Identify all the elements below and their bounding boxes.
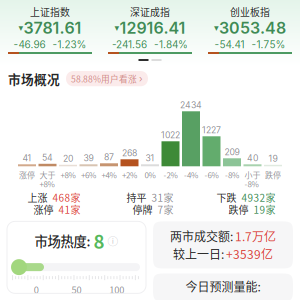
staticText: 上证指数 [30,6,70,17]
staticText: ▾ [18,22,23,33]
staticText: 创业板指 [230,6,270,17]
staticText: ⓘ [107,235,118,247]
button[interactable]: 市场热度: [7,221,146,293]
staticText: 3781.61 [23,18,81,37]
staticText: -54.41 [214,38,244,51]
staticText: 市场热度: [34,233,90,248]
button[interactable]: 上证指数 [0,6,100,51]
staticText: 31 [145,153,154,163]
staticText: -1.84% [154,38,188,51]
staticText: 209 [224,147,239,157]
staticText: 19 [268,153,277,164]
staticText: 7家 [157,204,173,215]
staticText: 0 [34,284,39,295]
staticText: 4932家 [241,192,275,203]
staticText: › [139,73,143,84]
staticText: -46.96 [13,38,45,51]
staticText: 1022 [161,130,180,140]
staticText: -2% [163,170,177,179]
staticText: 深证成指 [130,6,170,17]
staticText: 小于 -8% [244,170,260,188]
staticText: 涨停 [33,204,53,215]
staticText: 268 [122,148,137,158]
staticText: -1.23% [52,38,86,51]
staticText: 39 [83,153,93,163]
staticText: 31家 [151,192,173,203]
staticText: +4% [101,170,116,179]
staticText: -241.56 [112,38,147,51]
staticText: -1.75% [251,38,285,51]
staticText: 3053.48 [219,18,286,37]
staticText: 两市成交额: [170,229,233,243]
staticText: 87 [104,152,114,162]
staticText: 41家 [58,204,80,215]
staticText: -6% [204,170,218,179]
staticText: 上涨 [27,192,47,203]
staticText: 1.7万亿 [235,229,276,243]
staticText: 50 [71,284,81,295]
button[interactable]: 深证成指 [100,6,200,51]
staticText: -8% [225,170,239,179]
staticText: 40 [247,153,258,163]
staticText: 2434 [180,100,202,110]
staticText: +3539亿 [226,247,273,260]
staticText: 大于 +8% [39,170,55,188]
staticText: 8 [93,230,104,251]
staticText: 跌停 [228,204,248,215]
staticText: 41 [22,153,31,163]
staticText: +2% [122,170,137,179]
staticText: 468家 [52,192,80,203]
staticText: 停牌 [132,204,152,215]
staticText: 54 [42,152,53,163]
staticText: 58.88%用户看涨 [71,74,137,84]
staticText: 下跌 [216,192,236,203]
staticText: -4% [184,170,198,179]
button[interactable]: 创业板指 [200,6,300,51]
staticText: 市场概况 [8,71,60,86]
staticText: ▾ [214,22,219,33]
staticText: 持平 [126,192,146,203]
staticText: 今日预测量能: [185,279,260,293]
staticText: +6% [81,170,96,179]
staticText: 跌停 [265,170,281,179]
staticText: 0% [144,170,155,179]
staticText: ▾ [114,22,119,33]
staticText: 较上一日: [173,247,224,260]
staticText: +8% [60,170,75,179]
staticText: 19家 [253,204,275,215]
staticText: 12916.41 [119,18,185,37]
staticText: 100 [109,284,124,295]
staticText: 20 [63,153,73,164]
staticText: 1227 [202,125,221,135]
staticText: 涨停 [19,170,35,179]
button[interactable]: 58.88%用户看涨 [66,71,148,86]
